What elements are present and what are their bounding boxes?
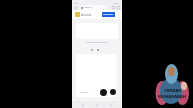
- button[interactable]: Record: [100, 89, 107, 96]
- button[interactable]: More options: [116, 5, 121, 10]
- staticText: CERDAS: [164, 88, 181, 94]
- staticText: MUHASABAH: [158, 94, 186, 100]
- staticText: https://example.com: [84, 6, 106, 9]
- staticText: 100%: [113, 1, 120, 4]
- button[interactable]: Reload: [111, 5, 116, 10]
- button[interactable]: Back: [80, 102, 86, 108]
- staticText: CONNECT: [103, 13, 114, 16]
- button[interactable]: Menu: [117, 13, 120, 16]
- staticText: Loading...: [79, 91, 89, 94]
- button[interactable]: Tabs: [73, 5, 78, 10]
- button[interactable]: https://example.com: [80, 5, 107, 10]
- button[interactable]: Recents: [108, 102, 114, 108]
- staticText: the details sent up: [86, 40, 108, 43]
- button[interactable]: CONNECT: [102, 12, 115, 17]
- staticText: Account: [81, 13, 92, 17]
- button[interactable]: Home: [94, 102, 100, 108]
- staticText: 9:41: [74, 1, 79, 4]
- button[interactable]: Stop: [110, 89, 116, 95]
